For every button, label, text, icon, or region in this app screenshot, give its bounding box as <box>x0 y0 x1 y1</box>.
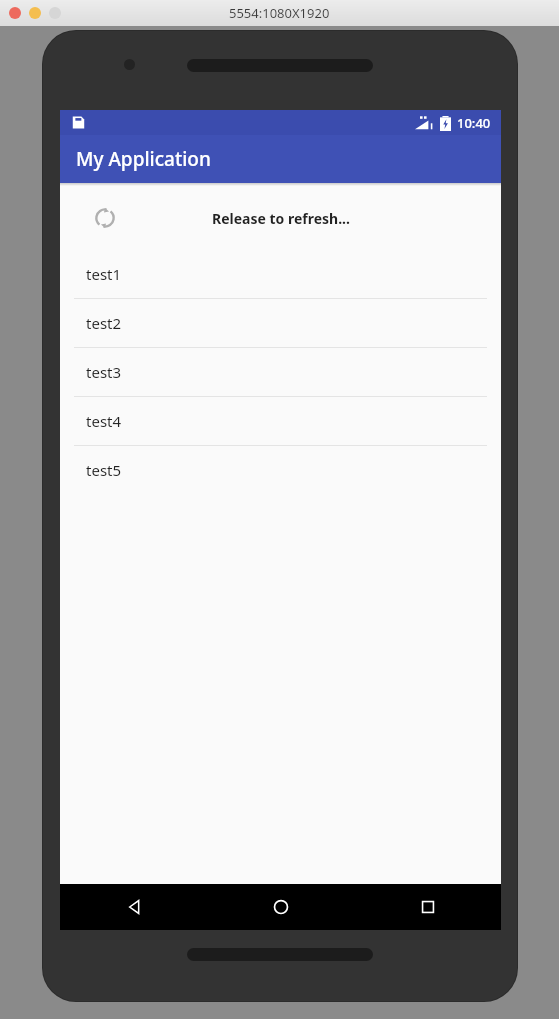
button[interactable]: test1 <box>60 250 501 299</box>
button[interactable]: test5 <box>60 446 501 494</box>
staticText: test1 <box>86 264 122 284</box>
staticText: test5 <box>86 460 122 480</box>
staticText: test4 <box>86 411 122 431</box>
button[interactable]: test3 <box>60 348 501 397</box>
staticText: 5554:1080X1920 <box>229 4 330 22</box>
other: Refresh <box>93 206 117 230</box>
staticText: 10:40 <box>457 114 491 132</box>
button[interactable]: Home <box>207 884 354 930</box>
staticText: test2 <box>86 313 122 333</box>
button[interactable]: My Application <box>60 135 501 183</box>
staticText: Release to refresh... <box>212 209 350 228</box>
button[interactable]: Recent apps <box>354 884 501 930</box>
button[interactable]: test2 <box>60 299 501 348</box>
staticText: My Application <box>76 146 211 172</box>
button[interactable]: Back <box>60 884 207 930</box>
button[interactable]: test4 <box>60 397 501 446</box>
staticText: test3 <box>86 362 122 382</box>
